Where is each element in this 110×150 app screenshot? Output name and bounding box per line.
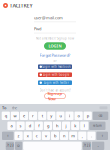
button[interactable]: LOGIN — [44, 42, 66, 50]
staticText: LOGIN — [48, 43, 61, 49]
button[interactable]: c — [33, 132, 41, 140]
button[interactable]: v — [42, 132, 50, 140]
staticText: ☺ — [17, 144, 20, 147]
staticText: ⇧ — [101, 134, 103, 137]
button[interactable]: . — [87, 132, 95, 140]
staticText: g — [47, 123, 49, 128]
staticText: Not a member? Signup now — [36, 37, 74, 40]
button[interactable]: Login with Twitter — [38, 80, 72, 85]
button[interactable]: j — [62, 122, 70, 130]
staticText: ⌄ — [97, 144, 99, 147]
staticText: .?123 — [83, 144, 91, 147]
staticText: Forgot Password? — [39, 53, 70, 58]
staticText: k — [74, 123, 76, 128]
staticText: v — [45, 133, 47, 138]
button[interactable]: a — [7, 122, 16, 130]
staticText: Login with Twitter — [44, 81, 69, 84]
button[interactable]: k — [71, 122, 79, 130]
button[interactable]: Numbers — [83, 142, 91, 150]
button[interactable]: g — [44, 122, 52, 130]
staticText: z — [18, 133, 20, 138]
staticText: , — [82, 133, 83, 138]
button[interactable]: e — [20, 112, 28, 120]
staticText: Login with Facebook — [42, 65, 70, 68]
button[interactable]: Numbers — [6, 142, 14, 150]
button[interactable]: Return — [89, 122, 105, 130]
staticText: y — [50, 113, 52, 118]
button[interactable]: p — [84, 112, 92, 120]
staticText: ⌫ — [98, 114, 102, 117]
button[interactable]: z — [14, 132, 23, 140]
button[interactable]: Signup Now — [44, 93, 65, 99]
button[interactable]: l — [80, 122, 88, 130]
button[interactable]: Shift — [2, 132, 14, 140]
staticText: r — [32, 113, 34, 118]
staticText: m — [71, 133, 75, 138]
button[interactable]: Hide Keyboard — [92, 142, 104, 150]
staticText: i — [69, 113, 70, 118]
button[interactable]: Forgot Password? — [39, 53, 70, 58]
staticText: return — [93, 124, 102, 127]
staticText: l — [84, 123, 85, 128]
button[interactable]: r — [29, 112, 37, 120]
staticText: w — [13, 113, 16, 118]
staticText: Signup Now — [47, 91, 62, 101]
button[interactable]: q — [2, 112, 10, 120]
button[interactable]: n — [60, 132, 68, 140]
staticText: Login with Google — [43, 73, 70, 76]
button[interactable]: Login with Google — [38, 72, 72, 77]
staticText: p — [87, 113, 89, 118]
button[interactable]: u — [56, 112, 64, 120]
staticText: .?123 — [6, 144, 14, 147]
staticText: the — [12, 105, 17, 110]
button[interactable]: d — [26, 122, 34, 130]
staticText: t — [42, 113, 43, 118]
button[interactable]: , — [78, 132, 86, 140]
button[interactable]: Login with Facebook — [38, 64, 72, 69]
staticText: user@mail.com — [34, 15, 63, 20]
button[interactable]: Emoji — [15, 142, 22, 150]
button[interactable]: s — [16, 122, 25, 130]
button[interactable]: m — [69, 132, 77, 140]
staticText: f — [38, 123, 39, 128]
staticText: c — [36, 133, 38, 138]
button[interactable]: f — [35, 122, 43, 130]
staticText: a — [10, 123, 12, 128]
staticText: d — [29, 123, 31, 128]
button[interactable]: x — [24, 132, 32, 140]
staticText: q — [5, 113, 7, 118]
button[interactable]: t — [38, 112, 46, 120]
button[interactable]: w — [11, 112, 19, 120]
staticText: Pwd — [34, 26, 41, 31]
button[interactable]: o — [74, 112, 83, 120]
staticText: e — [23, 113, 25, 118]
staticText: or — [53, 59, 56, 63]
button[interactable]: h — [53, 122, 61, 130]
button[interactable]: Delete — [93, 112, 108, 120]
staticText: n — [63, 133, 65, 138]
button[interactable]: Shift — [96, 132, 108, 140]
button[interactable]: y — [47, 112, 55, 120]
staticText: o — [78, 113, 80, 118]
staticText: s — [20, 123, 22, 128]
staticText: j — [66, 123, 67, 128]
staticText: . — [91, 133, 92, 138]
staticText: Don't have an account? — [39, 89, 70, 92]
staticText: TACITKEY — [10, 2, 33, 9]
button[interactable]: b — [51, 132, 59, 140]
staticText: x — [27, 133, 29, 138]
staticText: b — [54, 133, 56, 138]
staticText: h — [56, 123, 58, 128]
staticText: u — [59, 113, 61, 118]
staticText: ⇧ — [7, 134, 9, 137]
staticText: To — [2, 105, 6, 110]
button[interactable]: i — [65, 112, 74, 120]
